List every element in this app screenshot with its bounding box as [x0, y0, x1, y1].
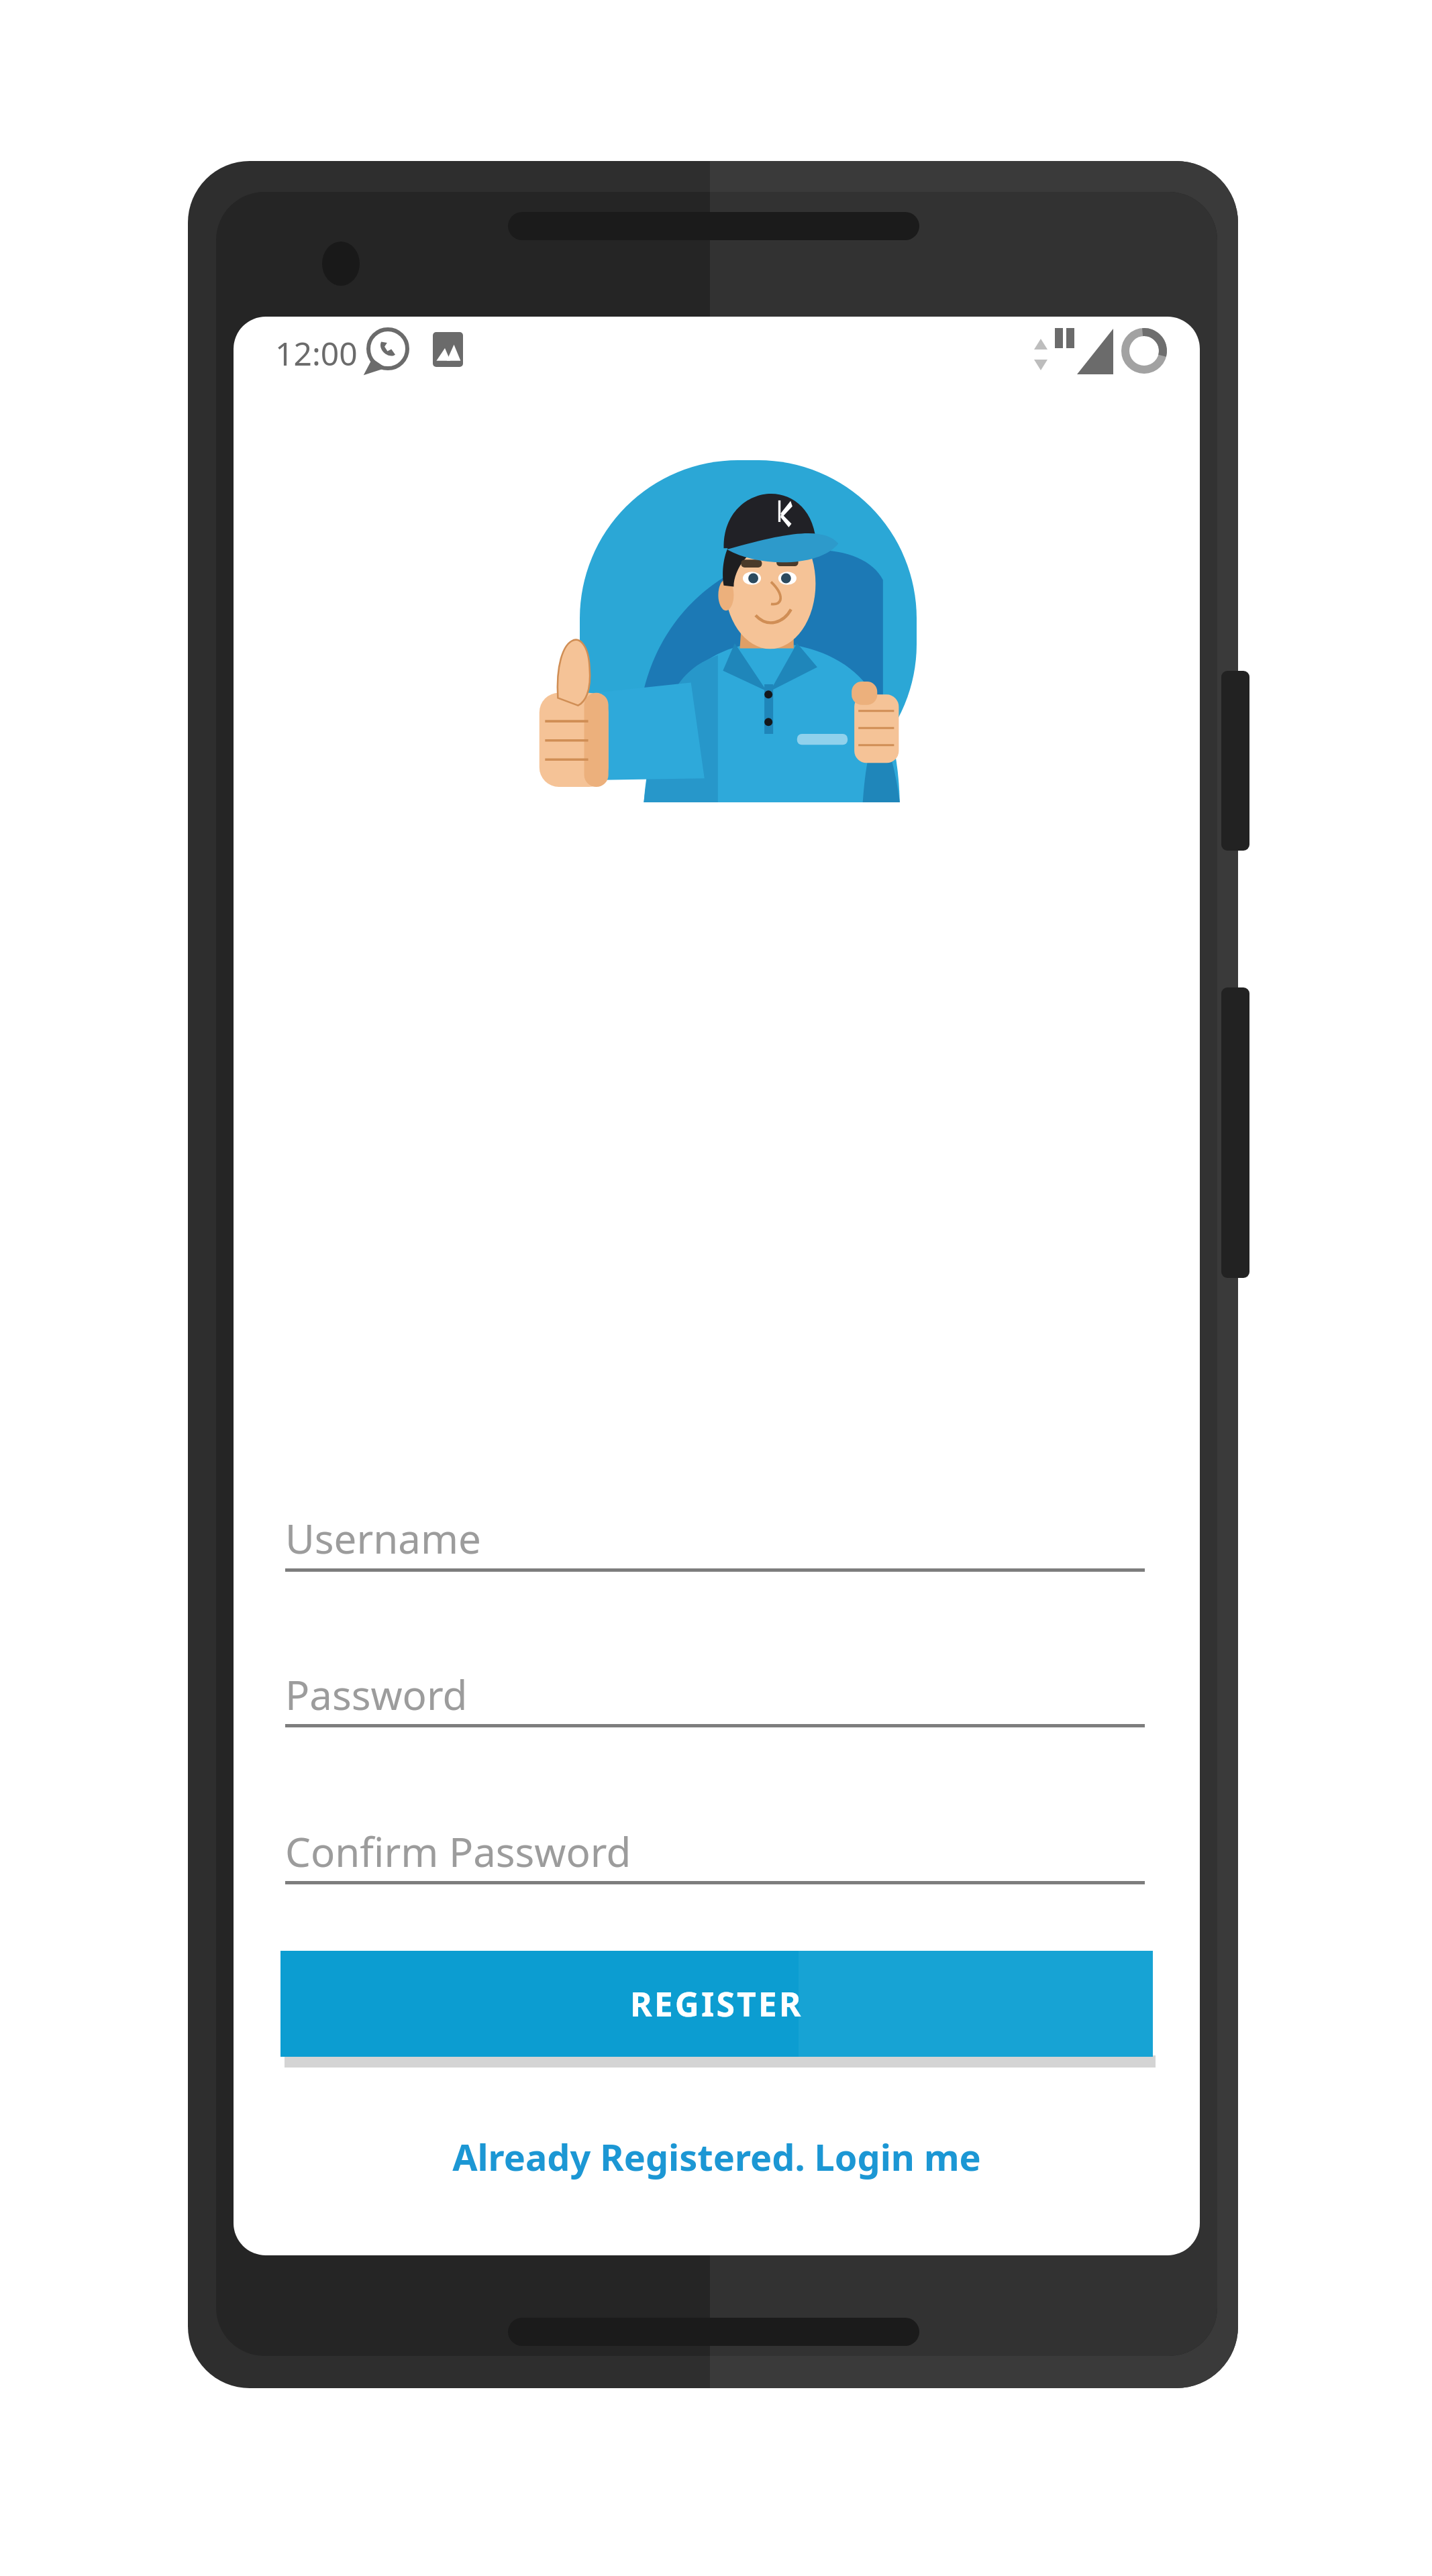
- button[interactable]: Already Registered. Login me: [280, 2116, 1153, 2197]
- button[interactable]: Username: [285, 1503, 1145, 1573]
- staticText: Password: [285, 1667, 468, 1722]
- staticText: Already Registered. Login me: [452, 2132, 981, 2182]
- staticText: 12:00: [275, 331, 358, 375]
- staticText: REGISTER: [630, 1981, 803, 2027]
- staticText: Confirm Password: [285, 1824, 631, 1879]
- button[interactable]: REGISTER: [280, 1951, 1153, 2057]
- staticText: Username: [285, 1511, 481, 1566]
- button[interactable]: Password: [285, 1659, 1145, 1729]
- button[interactable]: Confirm Password: [285, 1816, 1145, 1886]
